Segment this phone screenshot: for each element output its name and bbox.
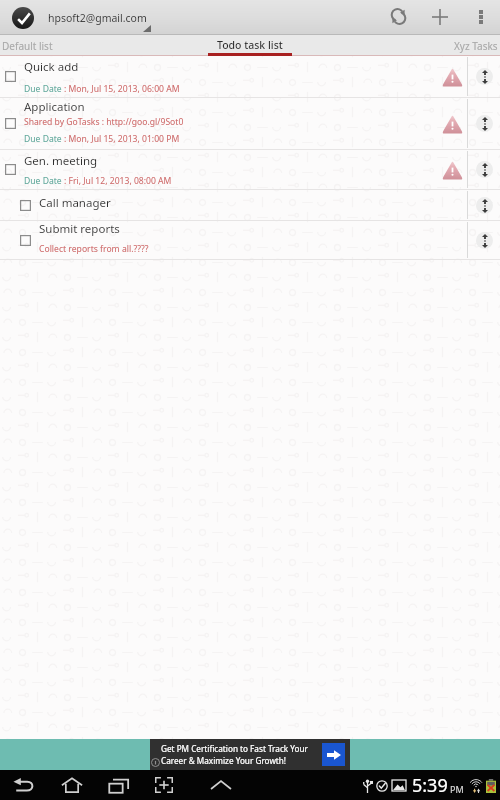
staticText: Xyz Tasks bbox=[454, 39, 498, 53]
button[interactable]: Reorder bbox=[468, 221, 500, 259]
button[interactable]: Complete Gen. meeting bbox=[0, 150, 500, 190]
staticText: Quick add bbox=[24, 59, 79, 75]
staticText: Submit reports bbox=[39, 221, 120, 237]
button[interactable]: Open advertisement bbox=[322, 743, 345, 766]
button[interactable]: Default list bbox=[0, 35, 166, 56]
button[interactable]: Recent apps bbox=[96, 770, 141, 800]
button[interactable]: Add task bbox=[417, 0, 463, 35]
button[interactable]: Back bbox=[0, 770, 48, 800]
staticText: Due Date : Mon, Jul 15, 2013, 06:00 AM bbox=[24, 83, 180, 95]
staticText: Collect reports from all.???? bbox=[39, 243, 149, 255]
staticText: Shared by GoTasks : http://goo.gl/9Sot0 bbox=[24, 116, 184, 128]
button[interactable]: Show menu bbox=[186, 770, 256, 800]
staticText: Application bbox=[24, 99, 85, 115]
button[interactable]: Get PM Certification to Fast Track Your bbox=[150, 739, 350, 770]
staticText: Call manager bbox=[39, 195, 111, 211]
staticText: 5:39 bbox=[412, 773, 448, 798]
staticText: Due Date : Fri, Jul 12, 2013, 08:00 AM bbox=[24, 175, 172, 187]
button[interactable]: Reorder bbox=[468, 190, 500, 220]
staticText: Career & Maximize Your Growth! bbox=[161, 755, 287, 766]
staticText: Gen. meeting bbox=[24, 153, 98, 169]
button[interactable]: Screenshot bbox=[141, 770, 186, 800]
button[interactable]: More options bbox=[463, 0, 499, 35]
button[interactable]: Complete Submit reports bbox=[0, 221, 500, 260]
button[interactable]: Home bbox=[48, 770, 96, 800]
button[interactable]: Xyz Tasks bbox=[333, 35, 500, 56]
staticText: Due Date : Mon, Jul 15, 2013, 01:00 PM bbox=[24, 133, 180, 145]
staticText: Default list bbox=[2, 39, 53, 53]
staticText: Todo task list bbox=[217, 38, 283, 52]
staticText: PM bbox=[450, 783, 464, 795]
button[interactable]: Complete Quick add bbox=[0, 56, 500, 98]
button[interactable]: Complete Application bbox=[0, 98, 500, 150]
button[interactable]: Reorder bbox=[468, 150, 500, 189]
button[interactable]: Todo task list bbox=[166, 35, 333, 56]
button[interactable]: Complete Application bbox=[0, 98, 24, 149]
button[interactable]: Complete Quick add bbox=[0, 56, 24, 97]
button[interactable]: Refresh bbox=[375, 0, 417, 35]
button[interactable]: Reorder bbox=[468, 98, 500, 149]
button[interactable]: Complete Call manager bbox=[0, 190, 500, 221]
button[interactable]: Reorder bbox=[468, 56, 500, 97]
staticText: Get PM Certification to Fast Track Your bbox=[161, 743, 308, 754]
button[interactable]: Complete Submit reports bbox=[0, 221, 39, 259]
staticText: hpsoft2@gmail.com bbox=[48, 11, 147, 25]
button[interactable]: Account bbox=[12, 7, 34, 29]
button[interactable]: Complete Call manager bbox=[0, 190, 39, 220]
button[interactable]: Complete Gen. meeting bbox=[0, 150, 24, 189]
